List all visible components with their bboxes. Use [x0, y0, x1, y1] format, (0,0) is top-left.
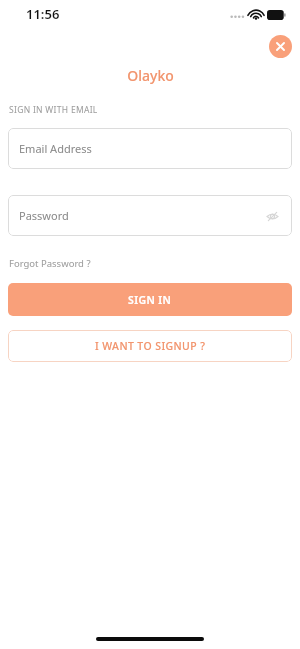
- button[interactable]: Email Address: [8, 128, 292, 169]
- staticText: Olayko: [127, 66, 174, 85]
- staticText: Forgot Password ?: [9, 257, 91, 270]
- staticText: SIGN IN: [128, 293, 172, 307]
- staticText: Password: [19, 208, 69, 223]
- button[interactable]: Show password: [264, 208, 280, 224]
- staticText: Email Address: [19, 141, 92, 156]
- staticText: 11:56: [26, 5, 60, 23]
- button[interactable]: Close: [269, 35, 292, 58]
- button[interactable]: I WANT TO SIGNUP ?: [8, 330, 292, 362]
- button[interactable]: Password: [8, 195, 292, 236]
- staticText: I WANT TO SIGNUP ?: [95, 339, 206, 353]
- staticText: SIGN IN WITH EMAIL: [9, 104, 98, 116]
- button[interactable]: Forgot Password ?: [9, 257, 91, 270]
- button[interactable]: SIGN IN: [8, 283, 292, 316]
